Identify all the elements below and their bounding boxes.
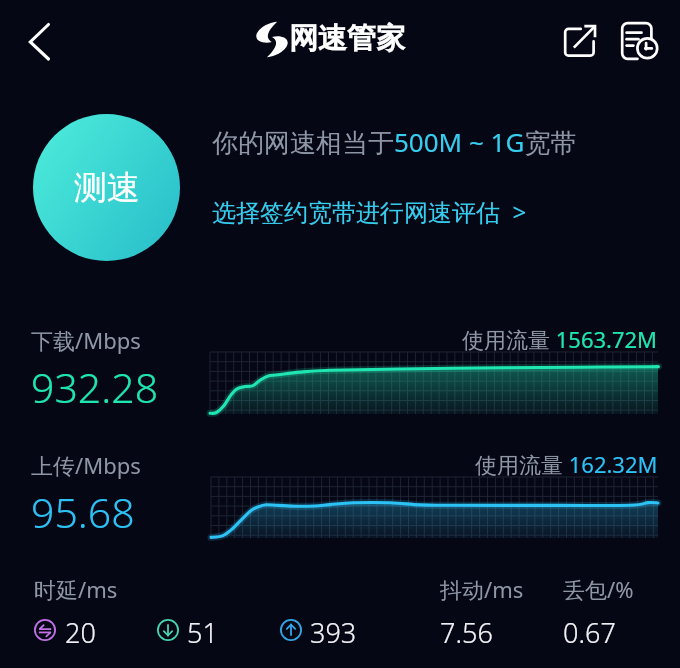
button[interactable]: 测速 xyxy=(33,114,180,261)
button[interactable]: Back xyxy=(14,18,62,66)
button[interactable]: Upload latency xyxy=(280,619,302,641)
button[interactable]: 选择签约宽带进行网速评估 > xyxy=(212,195,527,228)
staticText: 932.28 xyxy=(31,359,159,415)
staticText: 你的网速相当于500M ~ 1G宽带 xyxy=(212,124,577,160)
staticText: 使用流量 1563.72M xyxy=(462,324,658,354)
button[interactable]: Latency xyxy=(34,619,56,641)
staticText: 选择签约宽带进行网速评估 > xyxy=(212,195,527,228)
staticText: 测速 xyxy=(74,167,140,209)
button[interactable]: Share xyxy=(561,21,599,59)
staticText: 抖动/ms xyxy=(440,574,524,604)
staticText: 393 xyxy=(310,614,357,651)
staticText: 20 xyxy=(65,614,96,651)
staticText: 下载/Mbps xyxy=(31,325,141,355)
staticText: 时延/ms xyxy=(34,574,118,604)
staticText: 丢包/% xyxy=(563,574,634,604)
staticText: 网速管家 xyxy=(289,20,405,57)
staticText: 95.68 xyxy=(31,484,135,540)
button[interactable]: Download latency xyxy=(157,619,179,641)
staticText: 7.56 xyxy=(440,614,493,651)
staticText: 上传/Mbps xyxy=(31,450,141,480)
button[interactable]: History xyxy=(618,18,658,62)
staticText: 使用流量 162.32M xyxy=(475,449,658,479)
staticText: 0.67 xyxy=(563,614,616,651)
staticText: 51 xyxy=(187,614,218,651)
